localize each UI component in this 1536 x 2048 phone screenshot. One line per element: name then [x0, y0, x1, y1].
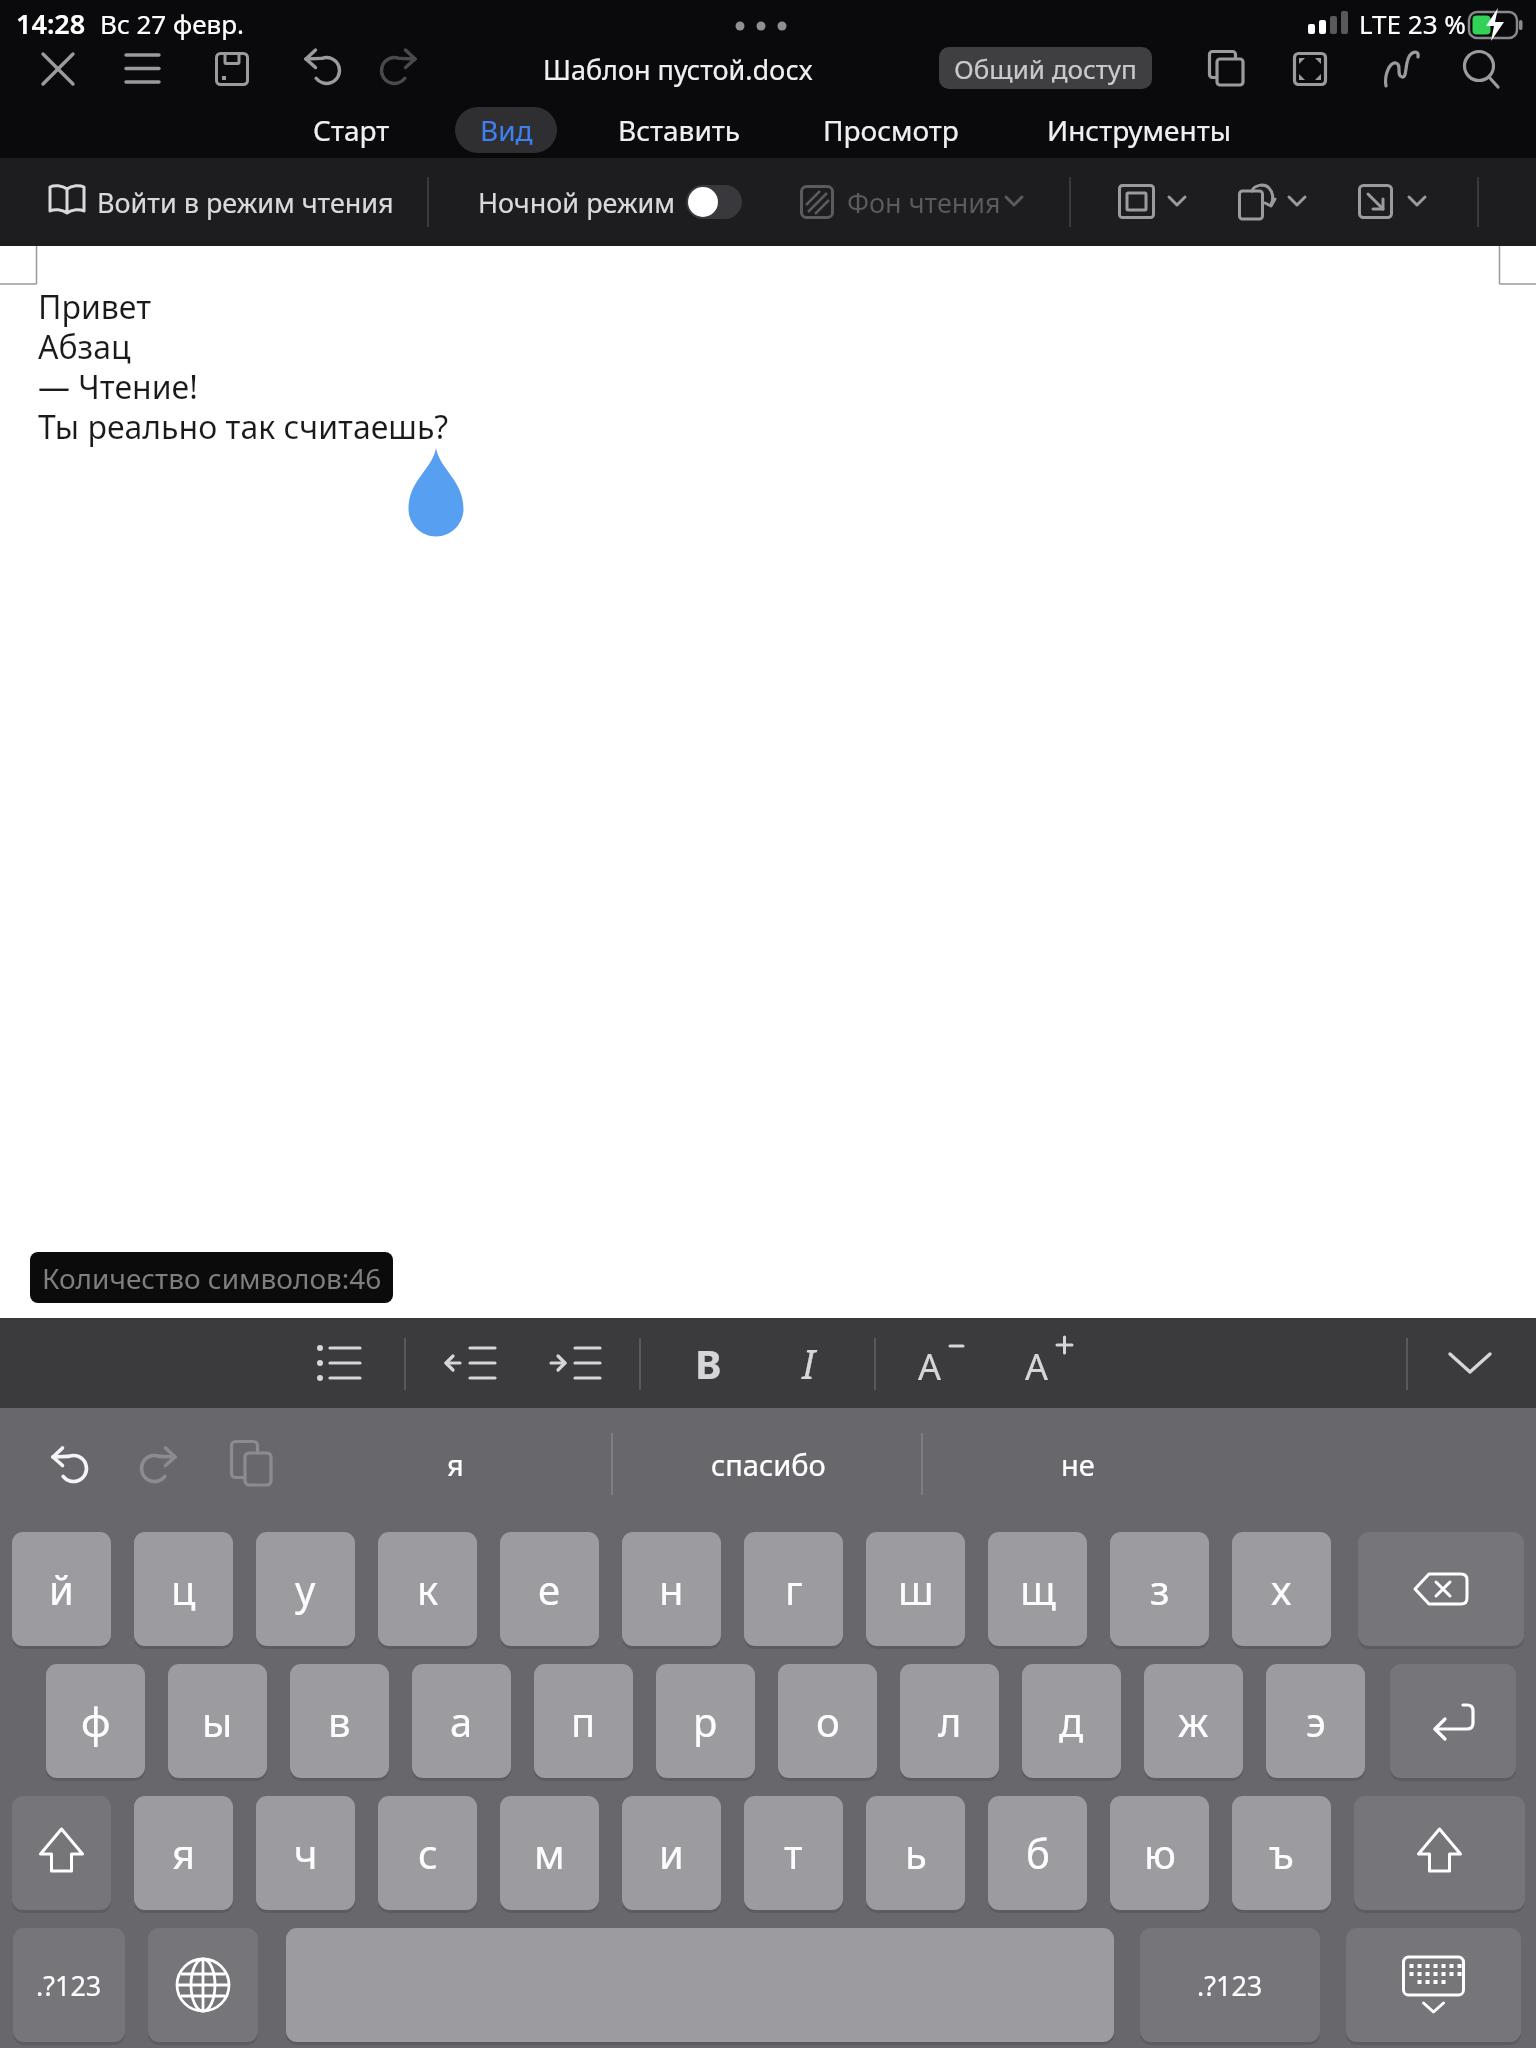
button[interactable]: ц [134, 1532, 233, 1646]
staticText: ь [905, 1826, 927, 1880]
button[interactable] [551, 1345, 601, 1381]
button[interactable]: в [290, 1664, 389, 1778]
button[interactable] [1406, 185, 1428, 219]
button[interactable] [50, 1446, 88, 1488]
staticText: з [1150, 1562, 1170, 1616]
button[interactable] [126, 53, 160, 85]
button[interactable] [48, 184, 86, 218]
button[interactable]: х [1232, 1532, 1331, 1646]
staticText: Войти в режим чтения [97, 184, 394, 221]
staticText: и [659, 1826, 684, 1880]
button[interactable]: I [802, 1336, 815, 1390]
button[interactable]: я [134, 1796, 233, 1910]
staticText: Общий доступ [954, 51, 1137, 86]
staticText: э [1306, 1694, 1326, 1748]
button[interactable]: з [1110, 1532, 1209, 1646]
button[interactable] [303, 48, 341, 90]
staticText: Привет [38, 285, 152, 329]
staticText: к [417, 1562, 439, 1616]
button[interactable]: Вид [455, 107, 557, 153]
button[interactable] [1462, 50, 1502, 90]
button[interactable] [1448, 1352, 1492, 1376]
button[interactable]: а [412, 1664, 511, 1778]
button[interactable] [12, 1796, 111, 1910]
button[interactable]: д [1022, 1664, 1121, 1778]
staticText: о [816, 1694, 840, 1748]
button[interactable] [1293, 52, 1327, 86]
button[interactable] [1390, 1664, 1516, 1778]
staticText: 14:28 [16, 5, 86, 42]
button[interactable] [1346, 1928, 1521, 2042]
button[interactable] [316, 1345, 362, 1381]
staticText: щ [1020, 1562, 1056, 1616]
button[interactable]: Старт [313, 111, 390, 149]
button[interactable] [1354, 1796, 1525, 1910]
button[interactable]: A [918, 1342, 942, 1391]
button[interactable] [1358, 1532, 1524, 1646]
staticText: р [693, 1694, 718, 1748]
staticText: м [534, 1826, 565, 1880]
button[interactable] [41, 52, 75, 86]
button[interactable] [1238, 183, 1276, 221]
button[interactable]: .?123 [13, 1928, 125, 2042]
button[interactable] [1286, 185, 1308, 219]
button[interactable]: п [534, 1664, 633, 1778]
button[interactable]: г [744, 1532, 843, 1646]
button[interactable]: не [1061, 1445, 1095, 1484]
button[interactable] [140, 1446, 178, 1488]
staticText: б [1026, 1826, 1050, 1880]
button[interactable]: б [988, 1796, 1087, 1910]
button[interactable]: .?123 [1140, 1928, 1320, 2042]
button[interactable]: ы [168, 1664, 267, 1778]
button[interactable] [686, 185, 742, 219]
button[interactable] [446, 1345, 496, 1381]
button[interactable]: т [744, 1796, 843, 1910]
button[interactable]: ш [866, 1532, 965, 1646]
button[interactable]: у [256, 1532, 355, 1646]
button[interactable]: A [1025, 1342, 1049, 1391]
staticText: Ты реально так считаешь? [38, 405, 449, 449]
button[interactable]: спасибо [711, 1445, 826, 1484]
button[interactable]: э [1266, 1664, 1365, 1778]
button[interactable]: ю [1110, 1796, 1209, 1910]
button[interactable]: B [695, 1336, 722, 1390]
button[interactable]: ф [46, 1664, 145, 1778]
button[interactable]: щ [988, 1532, 1087, 1646]
button[interactable]: и [622, 1796, 721, 1910]
staticText: г [785, 1562, 803, 1616]
button[interactable]: м [500, 1796, 599, 1910]
button[interactable] [380, 48, 418, 90]
button[interactable]: Вставить [618, 111, 741, 149]
button[interactable] [148, 1928, 258, 2042]
button[interactable]: с [378, 1796, 477, 1910]
button[interactable]: я [447, 1445, 464, 1484]
button[interactable]: л [900, 1664, 999, 1778]
button[interactable]: р [656, 1664, 755, 1778]
button[interactable] [1358, 184, 1394, 220]
button[interactable] [1166, 185, 1188, 219]
staticText: ч [294, 1826, 318, 1880]
button[interactable]: к [378, 1532, 477, 1646]
staticText: с [418, 1826, 438, 1880]
button[interactable] [1118, 184, 1156, 220]
button[interactable] [230, 1440, 276, 1488]
button[interactable]: Инструменты [1047, 111, 1232, 149]
button[interactable]: ч [256, 1796, 355, 1910]
button[interactable]: е [500, 1532, 599, 1646]
button[interactable]: н [622, 1532, 721, 1646]
button[interactable]: Общий доступ [939, 47, 1152, 89]
button[interactable]: Просмотр [823, 111, 959, 149]
button[interactable] [1383, 48, 1421, 90]
button[interactable]: ж [1144, 1664, 1243, 1778]
button[interactable] [215, 52, 249, 86]
staticText: х [1271, 1562, 1292, 1616]
staticText: .?123 [36, 1967, 102, 2004]
button[interactable]: о [778, 1664, 877, 1778]
button[interactable] [1208, 50, 1246, 88]
staticText: ш [898, 1562, 934, 1616]
button[interactable]: ь [866, 1796, 965, 1910]
button[interactable]: й [12, 1532, 111, 1646]
button[interactable]: ъ [1232, 1796, 1331, 1910]
staticText: Абзац [38, 325, 131, 369]
